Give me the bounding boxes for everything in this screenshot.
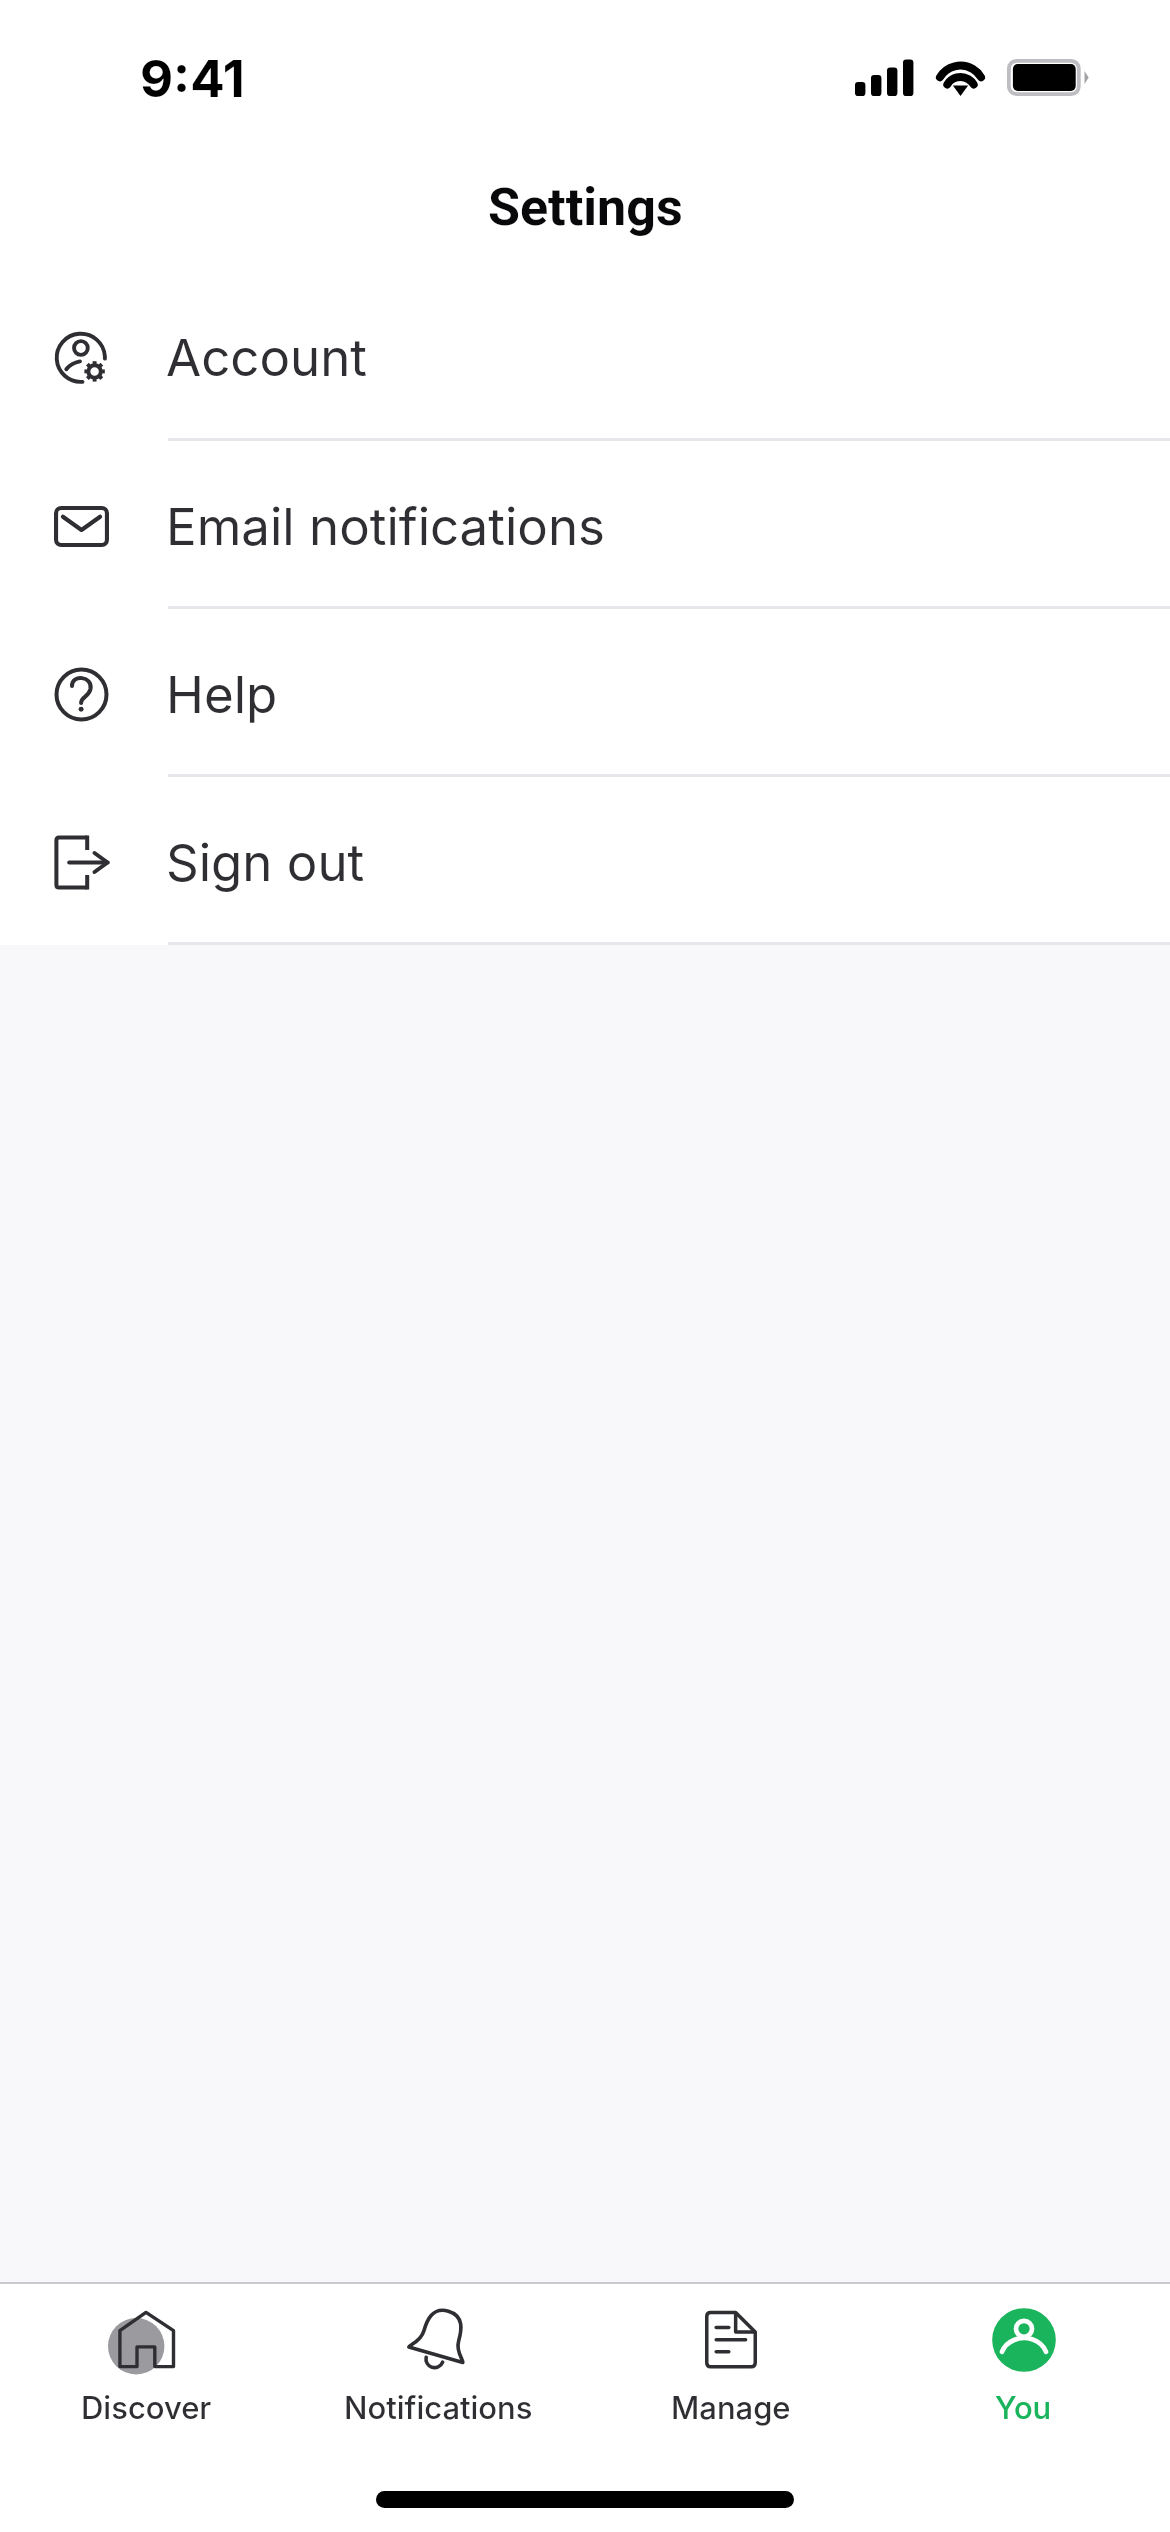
staticText: Notifications bbox=[344, 2389, 533, 2427]
button[interactable]: Manage bbox=[584, 2284, 877, 2445]
staticText: Discover bbox=[81, 2389, 212, 2427]
other: Account bbox=[54, 330, 109, 385]
staticText: Sign out bbox=[166, 832, 365, 894]
other: Help bbox=[54, 667, 109, 722]
button[interactable]: Notifications bbox=[292, 2284, 584, 2445]
staticText: 9:41 bbox=[140, 48, 245, 110]
button[interactable]: Email notifications bbox=[0, 441, 1170, 609]
staticText: Manage bbox=[671, 2389, 791, 2427]
staticText: Email notifications bbox=[166, 496, 605, 558]
button[interactable]: Account bbox=[0, 271, 1170, 441]
staticText: You bbox=[995, 2389, 1052, 2427]
staticText: Account bbox=[166, 327, 368, 389]
staticText: Settings bbox=[488, 177, 683, 238]
staticText: Help bbox=[166, 664, 278, 726]
other: Sign out bbox=[54, 835, 109, 890]
other: Email notifications bbox=[54, 499, 109, 554]
button[interactable]: Help bbox=[0, 609, 1170, 777]
button[interactable]: Sign out bbox=[0, 777, 1170, 945]
button[interactable]: You bbox=[877, 2284, 1170, 2445]
button[interactable]: Discover bbox=[0, 2284, 292, 2445]
